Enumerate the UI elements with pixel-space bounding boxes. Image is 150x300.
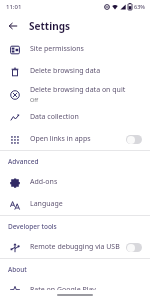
staticText: Delete browsing data on quit bbox=[30, 85, 126, 95]
staticText: Add-ons bbox=[30, 177, 58, 187]
staticText: Open links in apps bbox=[30, 134, 91, 144]
button[interactable]: Toggle bbox=[126, 243, 142, 252]
button[interactable]: Rate on Google Play bbox=[0, 279, 150, 290]
staticText: 63% bbox=[134, 3, 145, 10]
staticText: Data collection bbox=[30, 112, 79, 122]
button[interactable]: Open links in apps bbox=[0, 128, 150, 150]
button[interactable]: Toggle bbox=[126, 135, 142, 144]
button[interactable]: Delete browsing data on quit bbox=[0, 82, 150, 106]
button[interactable]: Language bbox=[0, 193, 150, 215]
staticText: Rate on Google Play bbox=[30, 285, 96, 290]
staticText: About bbox=[8, 265, 27, 274]
staticText: Off bbox=[30, 96, 39, 103]
staticText: Settings bbox=[29, 19, 70, 33]
button[interactable]: Delete browsing data bbox=[0, 60, 150, 82]
staticText: Site permissions bbox=[30, 44, 84, 54]
staticText: 11:01 bbox=[6, 3, 22, 11]
staticText: Advanced bbox=[8, 157, 39, 166]
button[interactable]: Add-ons bbox=[0, 171, 150, 193]
button[interactable]: Site permissions bbox=[0, 38, 150, 60]
button[interactable]: Back bbox=[2, 15, 24, 37]
button[interactable]: Data collection bbox=[0, 106, 150, 128]
staticText: Delete browsing data bbox=[30, 66, 101, 76]
staticText: Developer tools bbox=[8, 222, 57, 231]
button[interactable]: Remote debugging via USB bbox=[0, 236, 150, 258]
staticText: Language bbox=[30, 199, 63, 209]
staticText: Remote debugging via USB bbox=[30, 242, 120, 252]
